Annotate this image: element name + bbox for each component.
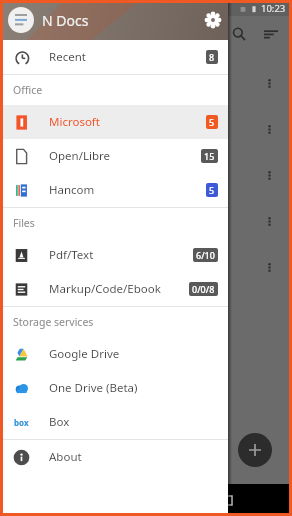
staticText: N Docs (42, 11, 89, 30)
staticText: 0/0/8 (192, 283, 215, 295)
button[interactable]: box (0, 405, 228, 439)
staticText: 5 (209, 116, 215, 128)
button[interactable]: Pdf/Text (0, 238, 228, 272)
staticText: 15 (204, 150, 215, 162)
button[interactable]: Search (224, 19, 254, 49)
staticText: Storage services (13, 315, 94, 329)
button[interactable]: Back (51, 485, 81, 515)
button[interactable]: Microsoft (0, 105, 228, 139)
button[interactable]: One Drive (Beta) (0, 371, 228, 405)
button[interactable]: Recent (0, 40, 228, 74)
staticText: 6/10 (196, 249, 215, 261)
button[interactable]: Sort (256, 19, 286, 49)
button[interactable]: N Docs (0, 0, 228, 40)
staticText: Files (13, 216, 35, 230)
staticText: 10:23 (261, 2, 286, 15)
staticText: Microsoft (49, 114, 100, 130)
staticText: Office (13, 83, 43, 97)
button[interactable]: Add (238, 433, 272, 467)
staticText: One Drive (Beta) (49, 380, 138, 396)
staticText: 5 (209, 184, 215, 196)
button[interactable]: Hancom (0, 173, 228, 207)
button[interactable]: About (0, 440, 228, 474)
button[interactable]: More options (258, 210, 280, 232)
staticText: Open/Libre (49, 148, 110, 164)
staticText: Google Drive (49, 346, 120, 362)
staticText: 8 (209, 51, 215, 63)
button[interactable]: More options (258, 256, 280, 278)
button[interactable]: Recents (212, 485, 242, 515)
button[interactable]: Settings (198, 5, 228, 35)
button[interactable]: More options (258, 164, 280, 186)
staticText: About (49, 449, 82, 465)
button[interactable]: Open/Libre (0, 139, 228, 173)
staticText: box (14, 417, 29, 428)
staticText: Box (49, 414, 70, 430)
button[interactable]: More options (258, 72, 280, 94)
staticText: Markup/Code/Ebook (49, 281, 161, 297)
button[interactable]: Google Drive (0, 337, 228, 371)
button[interactable]: Markup/Code/Ebook (0, 272, 228, 306)
staticText: Hancom (49, 182, 95, 198)
staticText: Pdf/Text (49, 247, 94, 263)
staticText: Recent (49, 49, 86, 65)
button[interactable]: Home (131, 485, 161, 515)
button[interactable]: More options (258, 118, 280, 140)
